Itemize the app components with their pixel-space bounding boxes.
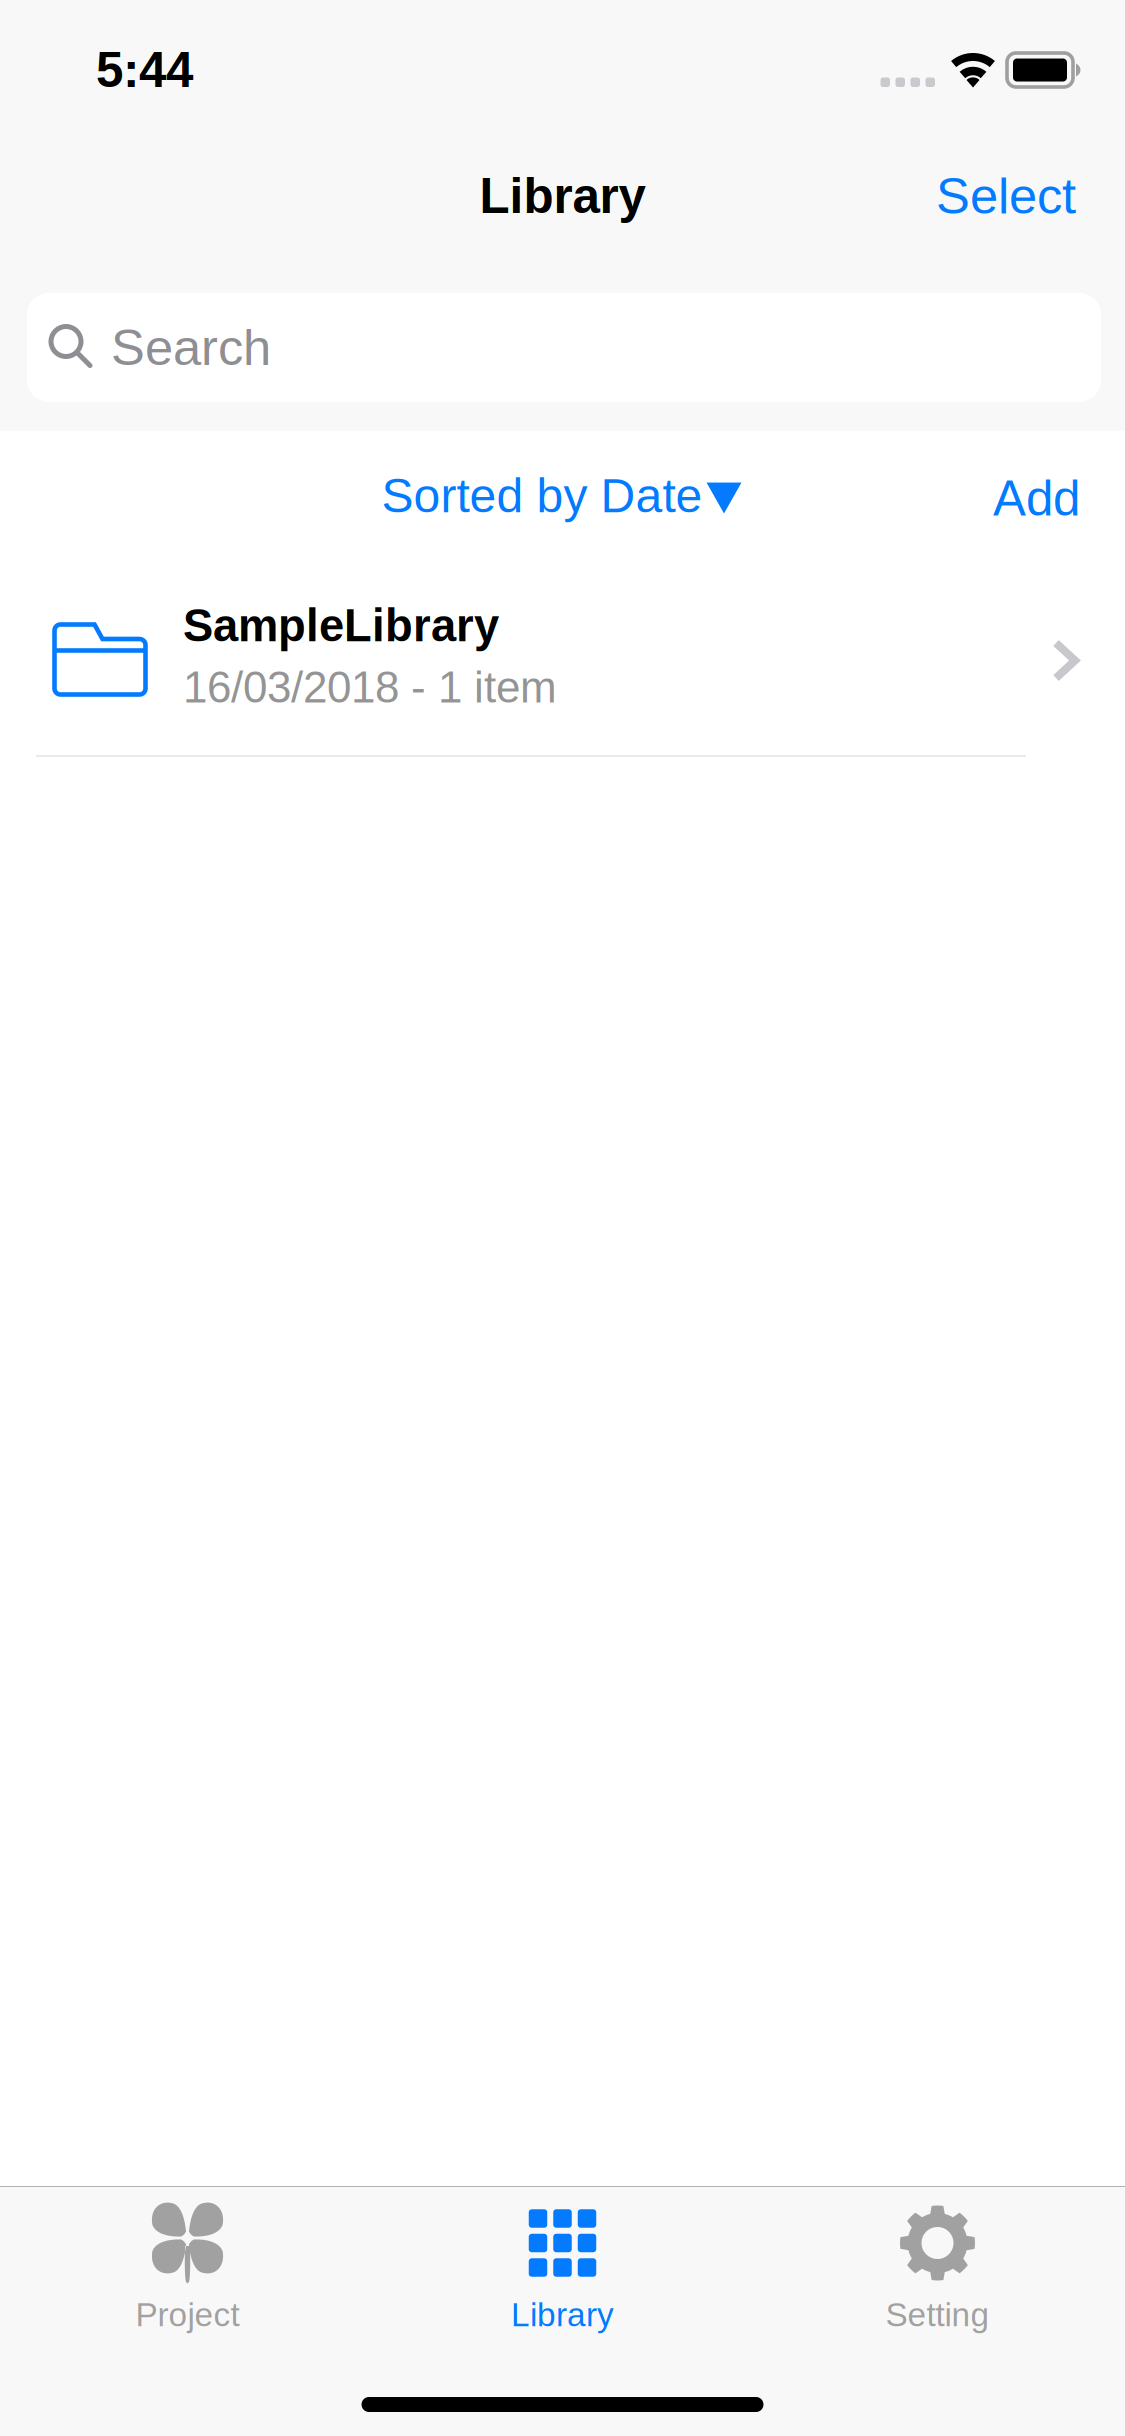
staticText: 16/03/2018 - 1 item xyxy=(183,663,557,712)
button[interactable]: Add xyxy=(963,451,1125,546)
staticText: Library xyxy=(511,2296,614,2333)
staticText: Sorted by Date xyxy=(381,469,702,522)
staticText: Project xyxy=(135,2296,239,2333)
button[interactable]: SampleLibrary xyxy=(0,566,1125,757)
button[interactable]: Setting xyxy=(750,2187,1125,2351)
staticText: Library xyxy=(479,168,645,223)
staticText: Select xyxy=(936,168,1076,224)
staticText: 5:44 xyxy=(96,42,193,97)
button[interactable]: Select xyxy=(906,144,1125,248)
staticText: Setting xyxy=(885,2296,989,2333)
staticText: SampleLibrary xyxy=(183,600,499,651)
staticText: Search xyxy=(111,319,271,376)
button[interactable]: Search xyxy=(27,293,1101,402)
button[interactable]: Project xyxy=(0,2187,375,2351)
button[interactable]: Sorted by Date xyxy=(365,452,759,545)
staticText: Add xyxy=(993,471,1080,526)
button[interactable]: Library xyxy=(375,2187,750,2351)
